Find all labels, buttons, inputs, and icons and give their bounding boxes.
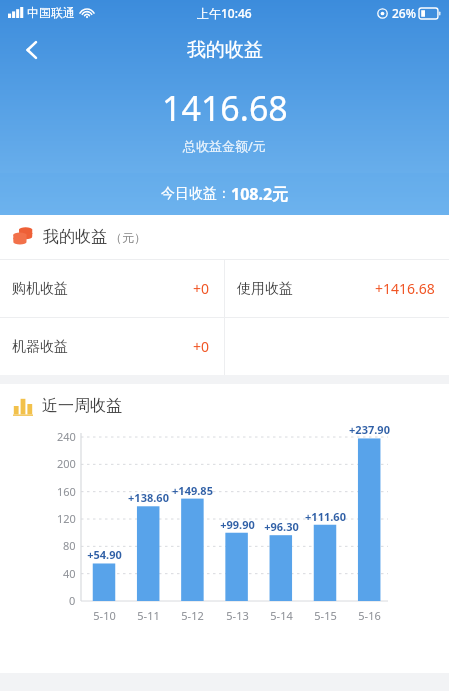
staticText: +111.60 — [305, 509, 346, 524]
staticText: 购机收益 — [12, 280, 68, 298]
staticText: 40 — [63, 566, 76, 581]
staticText: 160 — [57, 484, 76, 499]
staticText: +149.85 — [172, 483, 213, 498]
button[interactable]: Back — [10, 28, 54, 72]
staticText: 5-13 — [226, 608, 249, 623]
staticText: 上午10:46 — [197, 5, 252, 21]
button[interactable]: 机器收益 — [0, 318, 224, 375]
staticText: +96.30 — [264, 519, 299, 534]
staticText: 近一周收益 — [42, 396, 122, 416]
button[interactable]: 使用收益 — [225, 260, 449, 317]
staticText: 120 — [57, 511, 76, 526]
staticText: +0 — [193, 337, 210, 356]
staticText: 1416.68 — [162, 85, 288, 131]
staticText: 200 — [57, 456, 76, 471]
staticText: 5-15 — [314, 608, 337, 623]
staticText: +1416.68 — [375, 279, 435, 298]
staticText: 机器收益 — [12, 338, 68, 356]
staticText: 使用收益 — [237, 280, 293, 298]
staticText: +138.60 — [128, 490, 169, 505]
staticText: 80 — [63, 538, 76, 553]
staticText: 26% — [392, 5, 416, 21]
staticText: 我的收益 — [43, 227, 107, 247]
staticText: 5-10 — [93, 608, 116, 623]
staticText: 108.2元 — [231, 183, 289, 205]
staticText: 240 — [57, 429, 76, 444]
staticText: 总收益金额/元 — [183, 137, 266, 155]
staticText: 今日收益： — [161, 185, 231, 203]
staticText: +0 — [193, 279, 210, 298]
staticText: 5-12 — [181, 608, 204, 623]
staticText: 我的收益 — [187, 38, 263, 62]
staticText: +99.90 — [220, 517, 255, 532]
staticText: +54.90 — [87, 547, 122, 562]
staticText: 5-11 — [137, 608, 160, 623]
staticText: 0 — [69, 593, 76, 608]
staticText: 中国联通 — [27, 5, 75, 20]
button[interactable]: 购机收益 — [0, 260, 224, 317]
staticText: 5-16 — [358, 608, 381, 623]
staticText: （元） — [110, 230, 146, 245]
staticText: 5-14 — [270, 608, 293, 623]
staticText: +237.90 — [349, 422, 390, 437]
